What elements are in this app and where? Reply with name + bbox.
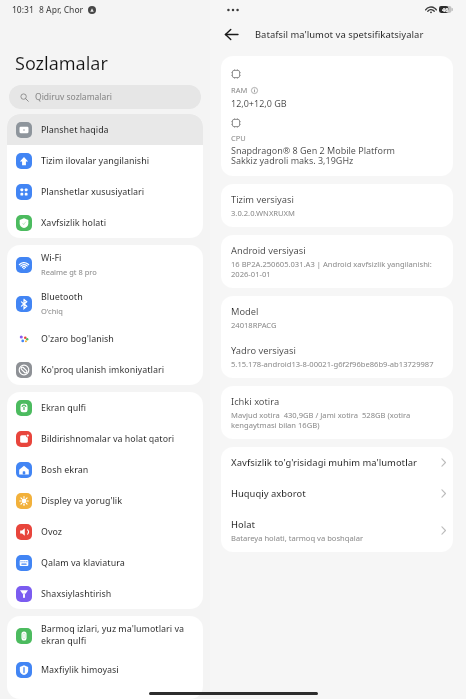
staticText: Realme gt 8 pro [41, 267, 97, 277]
button[interactable]: Qalam va klaviatura [7, 547, 203, 578]
staticText: Xavfsizlik to'g'risidagi muhim ma'lumotl… [231, 456, 417, 469]
button[interactable]: Xavfsizlik to'g'risidagi muhim ma'lumotl… [221, 447, 453, 478]
staticText: 16 BP2A.250605.031.A3 | Android xavfsizl… [231, 259, 432, 279]
staticText: O'chiq [41, 306, 63, 316]
button[interactable]: Huquqiy axborot [221, 478, 453, 509]
staticText: Sozlamalar [15, 51, 108, 76]
staticText: Yadro versiyasi [231, 344, 296, 357]
button[interactable]: Shaxsiylashtirish [7, 578, 203, 609]
staticText: Planshet haqida [41, 124, 109, 136]
staticText: Bluetooth [41, 291, 83, 303]
staticText: Bosh ekran [41, 464, 89, 476]
staticText: Tizim ilovalar yangilanishi [41, 155, 150, 167]
staticText: 5.15.178-android13-8-00021-g6f2f96be86b9… [231, 359, 434, 369]
staticText: Xavfsizlik holati [41, 217, 107, 229]
staticText: Wi-Fi [41, 252, 62, 264]
button[interactable]: Qidiruv sozlamalari [9, 85, 201, 109]
button[interactable]: Planshetlar xususiyatlari [7, 176, 203, 207]
staticText: Planshetlar xususiyatlari [41, 186, 145, 198]
staticText: Holat [231, 518, 256, 531]
button[interactable]: Maxfiylik himoyasi [7, 654, 203, 685]
button[interactable]: O'zaro bog'lanish [7, 323, 203, 354]
staticText: Batafsil ma'lumot va spetsifikatsiyalar [255, 28, 424, 41]
button[interactable]: Planshet haqida [7, 114, 203, 145]
button[interactable]: Bildirishnomalar va holat qatori [7, 423, 203, 454]
staticText: Batareya holati, tarmoq va boshqalar [231, 533, 364, 543]
button[interactable]: Bosh ekran [7, 454, 203, 485]
staticText: Maxfiylik himoyasi [41, 664, 119, 676]
button[interactable]: Tizim ilovalar yangilanishi [7, 145, 203, 176]
staticText: Ekran qulfi [41, 402, 87, 414]
button[interactable]: Ko'proq ulanish imkoniyatlari [7, 354, 203, 385]
staticText: Barmoq izlari, yuz ma'lumotlari va ekran… [41, 623, 185, 647]
button[interactable]: Ekran qulfi [7, 392, 203, 423]
button[interactable]: Back [220, 23, 242, 45]
staticText: Displey va yorug'lik [41, 495, 123, 507]
staticText: 46 [442, 6, 449, 13]
staticText: O'zaro bog'lanish [41, 333, 114, 345]
staticText: Tizim versiyasi [231, 193, 294, 206]
button[interactable]: Displey va yorug'lik [7, 485, 203, 516]
button[interactable]: Holat [221, 509, 453, 552]
button[interactable]: Xavfsizlik holati [7, 207, 203, 238]
button[interactable]: Barmoq izlari, yuz ma'lumotlari va ekran… [7, 616, 203, 654]
staticText: Mavjud xotira 430,9GB / Jami xotira 528G… [231, 410, 411, 430]
staticText: Qalam va klaviatura [41, 557, 125, 569]
staticText: Model [231, 305, 259, 318]
staticText: Ichki xotira [231, 395, 280, 408]
button[interactable]: Bluetooth [7, 284, 203, 323]
staticText: Bildirishnomalar va holat qatori [41, 433, 175, 445]
staticText: Shaxsiylashtirish [41, 588, 112, 600]
staticText: Ovoz [41, 526, 63, 538]
staticText: 3.0.2.0.WNXRUXM [231, 208, 295, 218]
staticText: RAM [231, 85, 248, 95]
staticText: Android versiyasi [231, 244, 306, 257]
staticText: 12,0+12,0 GB [231, 97, 287, 109]
staticText: Ko'proq ulanish imkoniyatlari [41, 364, 165, 376]
button[interactable]: Ovoz [7, 516, 203, 547]
staticText: 24018RPACG [231, 320, 277, 330]
button[interactable]: Ilovalar [7, 685, 203, 699]
button[interactable]: Wi-Fi [7, 245, 203, 284]
staticText: Huquqiy axborot [231, 487, 306, 500]
staticText: Qidiruv sozlamalari [35, 91, 113, 103]
staticText: 10:31 [12, 4, 34, 16]
staticText: 8 Apr, Chor [39, 4, 84, 16]
staticText: Snapdragon® 8 Gen 2 Mobile Platform Sakk… [231, 144, 396, 166]
staticText: CPU [231, 133, 246, 143]
